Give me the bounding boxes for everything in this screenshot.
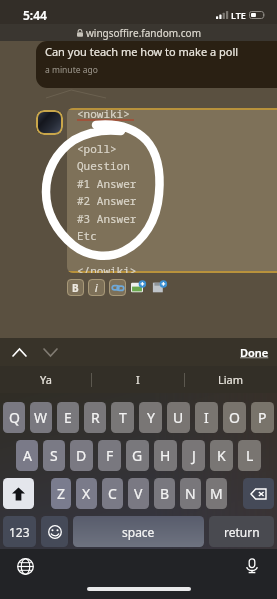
staticText: H <box>160 446 171 465</box>
staticText: Question <box>77 158 130 173</box>
button[interactable]: Change keyboard <box>12 553 38 579</box>
staticText: <nowiki> <box>77 108 130 121</box>
button[interactable]: A <box>16 440 38 471</box>
button[interactable]: D <box>70 440 93 471</box>
button[interactable]: Can you teach me how to make a poll <box>36 41 277 88</box>
button[interactable]: Done <box>240 345 269 360</box>
button[interactable]: U <box>167 402 190 433</box>
staticText: 5:44 <box>23 7 47 23</box>
button[interactable]: I <box>92 366 184 393</box>
staticText: K <box>217 446 226 465</box>
staticText: V <box>134 484 143 503</box>
button[interactable]: Ya <box>0 366 91 393</box>
button[interactable]: B <box>67 279 84 296</box>
staticText: </nowiki> <box>77 263 137 273</box>
button[interactable]: Backspace <box>243 478 274 509</box>
button[interactable]: Liam <box>185 366 277 393</box>
staticText: N <box>185 484 196 503</box>
button[interactable]: Q <box>3 402 25 433</box>
staticText: Etc <box>77 228 97 243</box>
button[interactable]: V <box>128 478 149 509</box>
button[interactable]: W <box>30 402 52 433</box>
button[interactable]: K <box>210 440 233 471</box>
staticText: <poll> <box>77 141 117 156</box>
staticText: T <box>119 408 127 427</box>
staticText: #3 Answer <box>77 211 137 226</box>
staticText: Liam <box>218 372 244 387</box>
staticText: M <box>210 484 223 503</box>
staticText: U <box>173 408 184 427</box>
button[interactable]: L <box>238 440 261 471</box>
staticText: Y <box>147 408 155 427</box>
staticText: W <box>34 408 48 427</box>
button[interactable]: G <box>126 440 149 471</box>
button[interactable]: X <box>76 478 97 509</box>
button[interactable]: O <box>223 402 246 433</box>
button[interactable]: Y <box>139 402 162 433</box>
staticText: Q <box>9 408 20 427</box>
staticText: B <box>72 281 79 295</box>
button[interactable]: Next field <box>37 340 63 364</box>
button[interactable]: M <box>206 478 227 509</box>
button[interactable]: Insert file <box>151 279 168 296</box>
button[interactable]: <nowiki> <box>67 108 277 273</box>
button[interactable]: R <box>84 402 106 433</box>
staticText: L <box>246 446 254 465</box>
staticText: P <box>258 408 267 427</box>
staticText: a minute ago <box>45 64 98 76</box>
staticText: Z <box>57 484 66 503</box>
button[interactable]: Emoji <box>41 516 68 547</box>
button[interactable]: Insert image <box>130 279 147 296</box>
button[interactable]: B <box>154 478 175 509</box>
staticText: space <box>122 524 155 540</box>
button[interactable]: S <box>43 440 65 471</box>
staticText: A <box>23 446 32 465</box>
button[interactable]: return <box>209 516 274 547</box>
button[interactable]: Z <box>51 478 71 509</box>
button[interactable]: 123 <box>3 516 36 547</box>
staticText: Done <box>240 345 269 360</box>
staticText: F <box>106 446 114 465</box>
button[interactable]: F <box>98 440 121 471</box>
button[interactable]: P <box>251 402 274 433</box>
staticText: return <box>224 524 260 540</box>
staticText: C <box>108 484 117 503</box>
staticText: E <box>64 408 72 427</box>
button[interactable]: i <box>88 279 105 296</box>
staticText: G <box>132 446 143 465</box>
staticText: J <box>192 446 196 465</box>
staticText: B <box>160 484 170 503</box>
button[interactable]: C <box>102 478 123 509</box>
button[interactable]: space <box>73 516 204 547</box>
staticText: #2 Answer <box>77 193 137 208</box>
staticText: I <box>136 372 140 387</box>
button[interactable]: Shift <box>3 478 34 509</box>
button[interactable]: Previous field <box>6 340 32 364</box>
button[interactable]: Dictate <box>239 553 265 579</box>
staticText: LTE <box>231 9 246 21</box>
button[interactable]: J <box>182 440 205 471</box>
button[interactable]: T <box>111 402 134 433</box>
staticText: O <box>229 408 240 427</box>
staticText: #1 Answer <box>77 176 137 191</box>
staticText: 123 <box>9 524 30 540</box>
staticText: D <box>76 446 87 465</box>
button[interactable]: E <box>57 402 79 433</box>
staticText: I <box>204 408 209 427</box>
staticText: S <box>50 446 58 465</box>
staticText: wingsoffire.fandom.com <box>86 26 201 40</box>
staticText: Ya <box>40 372 52 387</box>
staticText: X <box>82 484 91 503</box>
button[interactable]: H <box>154 440 177 471</box>
button[interactable]: I <box>195 402 218 433</box>
staticText: i <box>95 281 98 295</box>
staticText: R <box>91 408 100 427</box>
button[interactable]: N <box>180 478 201 509</box>
staticText: Can you teach me how to make a poll <box>45 44 239 59</box>
button[interactable]: Insert link <box>109 279 126 296</box>
